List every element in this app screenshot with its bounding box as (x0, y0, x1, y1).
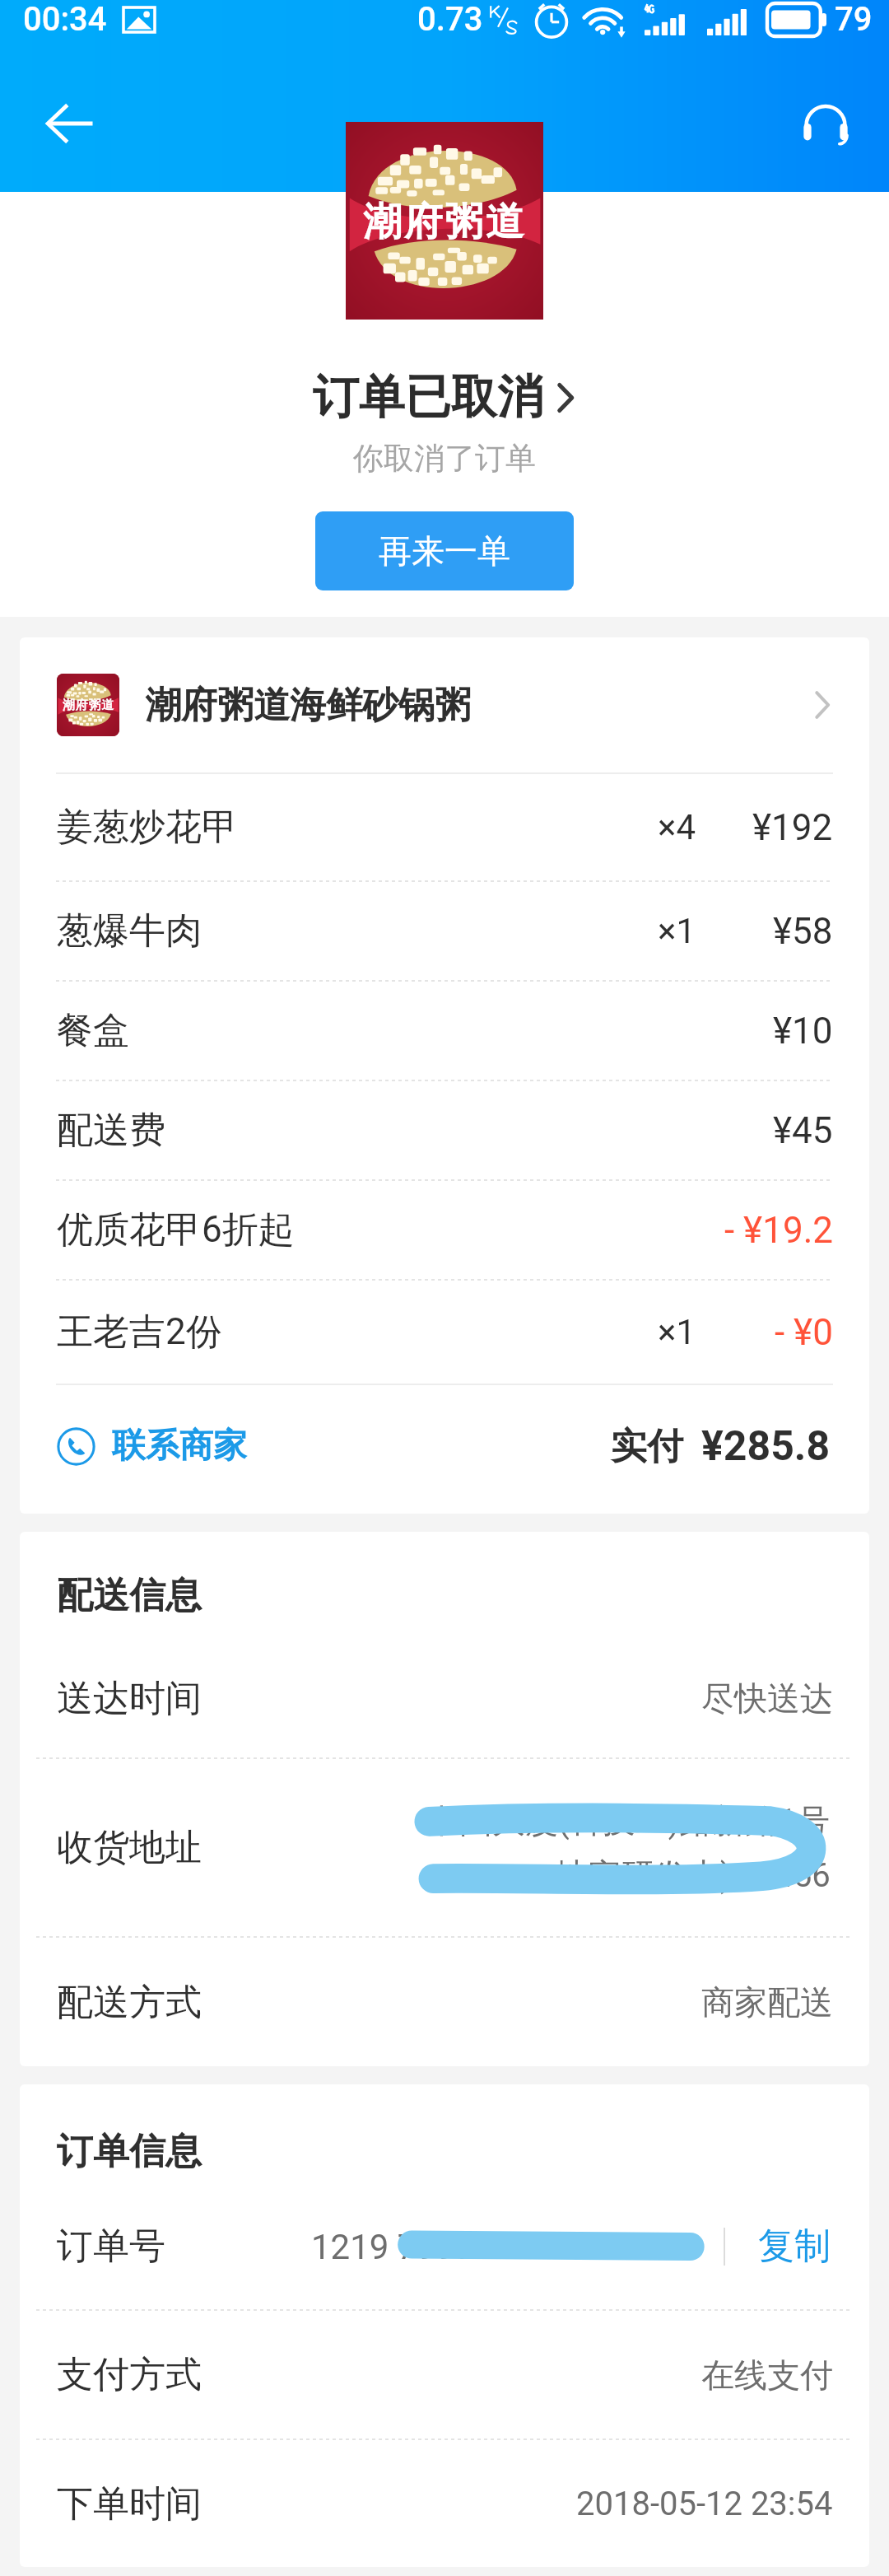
staticText: 王老吉2份 (57, 1309, 222, 1355)
staticText: 在线支付 (701, 2354, 833, 2396)
staticText: 收货地址 (57, 1825, 202, 1870)
staticText: 配送费 (57, 1108, 165, 1153)
staticText: ¥45 (773, 1109, 833, 1152)
button[interactable]: 订单已取消 (313, 368, 576, 427)
staticText: 潮府粥道 (363, 198, 527, 246)
staticText: ×1 (658, 1312, 696, 1352)
staticText: - ¥19.2 (724, 1209, 833, 1252)
staticText: 下单时间 (57, 2481, 202, 2527)
staticText: ¥58 (773, 910, 833, 953)
staticText: ¥10 (773, 1010, 833, 1052)
staticText: 潮府粥道海鲜砂锅粥 (145, 683, 471, 728)
staticText: 再来一单 (379, 530, 510, 572)
staticText: - ¥0 (775, 1311, 833, 1354)
staticText: ¥285.8 (701, 1422, 831, 1471)
staticText: 商家配送 (701, 1981, 833, 2023)
button[interactable]: 潮府粥道 (20, 637, 869, 772)
staticText: 中国大厦(科技二)路新路1号 (426, 1800, 831, 1841)
staticText: 送达时间 (57, 1676, 202, 1721)
staticText: ×1 (658, 911, 696, 951)
staticText: 姜葱炒花甲 (57, 805, 238, 850)
staticText: 联系商家 (112, 1425, 247, 1468)
staticText: 2018-05-12 23:54 (576, 2485, 833, 2523)
button[interactable]: Customer service (780, 79, 871, 168)
button[interactable]: Back (25, 79, 115, 168)
staticText: 葱爆牛肉 (57, 908, 202, 954)
button[interactable]: 复制 (758, 2224, 831, 2269)
staticText: ×4 (658, 807, 696, 847)
staticText: 订单信息 (57, 2129, 202, 2174)
staticText: 实付 (611, 1424, 683, 1469)
staticText: 配送信息 (57, 1573, 202, 1618)
staticText: 配送方式 (57, 1980, 202, 2025)
staticText: 1219 7997 3456 82 (311, 2227, 609, 2267)
staticText: 79 (835, 0, 873, 39)
staticText: 订单号 (57, 2224, 165, 2269)
staticText: 订单已取消 (313, 368, 543, 427)
staticText: ¥192 (752, 806, 833, 849)
staticText: 尽快送达 (701, 1678, 833, 1719)
staticText: 你取消了订单 (353, 439, 536, 478)
staticText: 00:34 (23, 0, 107, 39)
staticText: 0.73 (417, 0, 483, 39)
staticText: 优质花甲6折起 (57, 1207, 295, 1253)
staticText: 支付方式 (57, 2352, 202, 2397)
staticText: 餐盒 (57, 1008, 129, 1053)
button[interactable]: 联系商家 (57, 1407, 247, 1486)
staticText: 潮府粥道 (63, 698, 114, 713)
staticText: 地宝研发大) 2456 (556, 1855, 831, 1896)
button[interactable]: 再来一单 (315, 511, 574, 590)
